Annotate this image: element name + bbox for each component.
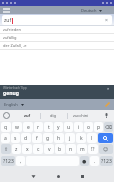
button[interactable]: zufrieden [0,26,114,34]
staticText: Wörterbuch Tipp [3,86,27,90]
staticText: j [69,135,71,142]
button[interactable]: zuf [24,113,31,118]
staticText: genug [3,90,19,97]
button[interactable] [31,174,36,179]
staticText: v [48,146,51,153]
button[interactable]: x [22,144,32,154]
button[interactable]: t [44,122,53,132]
button[interactable]: zucchini [73,113,89,118]
button[interactable]: English [4,102,24,107]
staticText: f [36,135,38,142]
staticText: l [91,135,93,142]
button[interactable]: ⌫ [104,122,113,132]
staticText: t [48,124,50,131]
button[interactable]: !? [88,144,98,154]
staticText: g [46,135,50,142]
staticText: ● [82,158,87,164]
button[interactable]: . [90,156,99,166]
staticText: , [20,158,22,165]
staticText: e [27,124,30,131]
button[interactable]: o [84,122,93,132]
button[interactable]: q [1,122,11,132]
staticText: p [97,124,101,131]
button[interactable]: b [55,144,65,154]
button[interactable]: ☺ [99,144,113,154]
button[interactable]: a [1,133,10,143]
button[interactable] [3,8,10,13]
button[interactable] [98,133,113,143]
staticText: w [15,124,19,131]
staticText: !? [91,146,95,153]
staticText: u [67,124,71,131]
button[interactable]: i [74,122,83,132]
button[interactable]: p [94,122,103,132]
button[interactable]: k [76,133,86,143]
staticText: c [37,146,40,153]
button[interactable]: l [87,133,97,143]
button[interactable]: e [23,122,33,132]
button[interactable]: z [12,144,21,154]
staticText: x [26,146,29,153]
button[interactable]: g [43,133,53,143]
staticText: ☺ [103,146,109,152]
staticText: zufällig [3,35,17,40]
staticText: b [58,146,62,153]
staticText: a [4,135,7,142]
button[interactable]: w [12,122,22,132]
staticText: r [37,124,40,131]
button[interactable] [3,112,10,119]
button[interactable]: Deutsch [81,8,102,13]
staticText: o [87,124,91,131]
staticText: der Zufall, -e [3,43,27,48]
button[interactable]: d [21,133,31,143]
staticText: i [78,124,80,131]
button[interactable] [105,102,110,107]
staticText: h [57,135,61,142]
button[interactable]: u [64,122,73,132]
button[interactable]: × [107,86,110,91]
staticText: z [15,146,18,153]
button[interactable] [104,113,109,118]
button[interactable]: ?123 [1,156,15,166]
staticText: m [80,146,85,153]
staticText: d [24,135,28,142]
button[interactable]: der Zufall, -e [0,42,114,50]
button[interactable]: ?123 [100,156,113,166]
staticText: English [4,102,18,107]
button[interactable]: c [33,144,43,154]
button[interactable]: zuf [2,15,112,25]
button[interactable]: s [11,133,20,143]
staticText: Deutsch [81,8,97,13]
button[interactable]: j [65,133,75,143]
staticText: . [94,158,96,165]
staticText: ⌫ [105,124,113,130]
staticText: s [14,135,17,142]
button[interactable]: ● [80,156,89,166]
button[interactable] [57,175,60,178]
button[interactable]: r [34,122,43,132]
staticText: zufrieden [3,27,21,32]
staticText: ?123 [101,158,112,165]
button[interactable]: × [105,17,108,24]
staticText: ?123 [3,158,14,165]
staticText: y [57,124,60,131]
button[interactable]: h [54,133,64,143]
button[interactable]: ⇧ [1,144,11,154]
button[interactable]: n [66,144,76,154]
button[interactable]: dig [50,113,56,118]
staticText: n [69,146,73,153]
button[interactable]: , [16,156,25,166]
staticText: zuf [4,17,12,24]
staticText: ⇧ [4,146,9,152]
button[interactable]: m [77,144,87,154]
button[interactable]: zufällig [0,34,114,42]
button[interactable]: y [54,122,63,132]
staticText: q [4,124,8,131]
staticText: k [80,135,83,142]
button[interactable]: v [44,144,54,154]
button[interactable]: f [32,133,42,143]
